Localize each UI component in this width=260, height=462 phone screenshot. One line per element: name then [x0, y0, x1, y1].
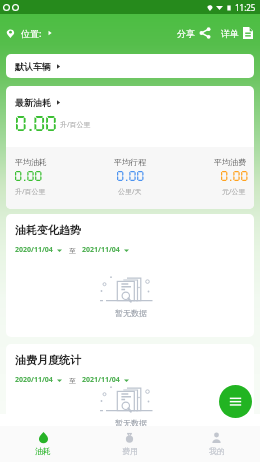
button[interactable]: 2020/11/04: [15, 375, 62, 385]
staticText: 油耗变化趋势: [15, 223, 81, 237]
button[interactable]: 平均油耗: [6, 147, 88, 209]
button[interactable]: 我的: [173, 426, 260, 462]
staticText: 2021/11/04: [82, 375, 120, 385]
staticText: 平均油耗: [15, 157, 47, 167]
staticText: 至: [69, 246, 76, 255]
button[interactable]: 平均油费: [171, 147, 254, 209]
staticText: 2020/11/04: [15, 245, 53, 255]
staticText: 平均行程: [114, 157, 146, 167]
staticText: 至: [69, 376, 76, 385]
button[interactable]: 详单: [221, 27, 253, 39]
button[interactable]: 位置:: [6, 27, 53, 39]
staticText: 升/百公里: [60, 120, 91, 130]
staticText: 平均油费: [214, 157, 246, 167]
staticText: 升/百公里: [15, 187, 46, 197]
button[interactable]: 2021/11/04: [82, 245, 129, 255]
staticText: 默认车辆: [15, 61, 51, 72]
button[interactable]: Menu: [219, 385, 252, 418]
staticText: 费用: [122, 446, 138, 456]
staticText: 油费月度统计: [15, 353, 81, 367]
staticText: 油耗: [35, 446, 51, 456]
staticText: 位置:: [21, 27, 42, 39]
button[interactable]: 默认车辆: [6, 54, 254, 78]
staticText: 公里/天: [118, 187, 142, 197]
staticText: 2021/11/04: [82, 245, 120, 255]
button[interactable]: 分享: [177, 27, 211, 39]
button[interactable]: 平均行程: [88, 147, 171, 209]
staticText: 暂无数据: [115, 308, 147, 318]
staticText: 我的: [209, 446, 225, 456]
staticText: 11:25: [235, 2, 256, 13]
staticText: 暂无数据: [115, 418, 147, 426]
staticText: 2020/11/04: [15, 375, 53, 385]
button[interactable]: 油耗: [0, 426, 86, 462]
button[interactable]: 2021/11/04: [82, 375, 129, 385]
staticText: 分享: [177, 28, 195, 39]
staticText: 最新油耗: [15, 97, 51, 108]
staticText: 元/公里: [222, 187, 246, 197]
button[interactable]: 费用: [86, 426, 173, 462]
staticText: 详单: [221, 28, 239, 39]
button[interactable]: 最新油耗: [15, 97, 61, 108]
button[interactable]: 2020/11/04: [15, 245, 62, 255]
